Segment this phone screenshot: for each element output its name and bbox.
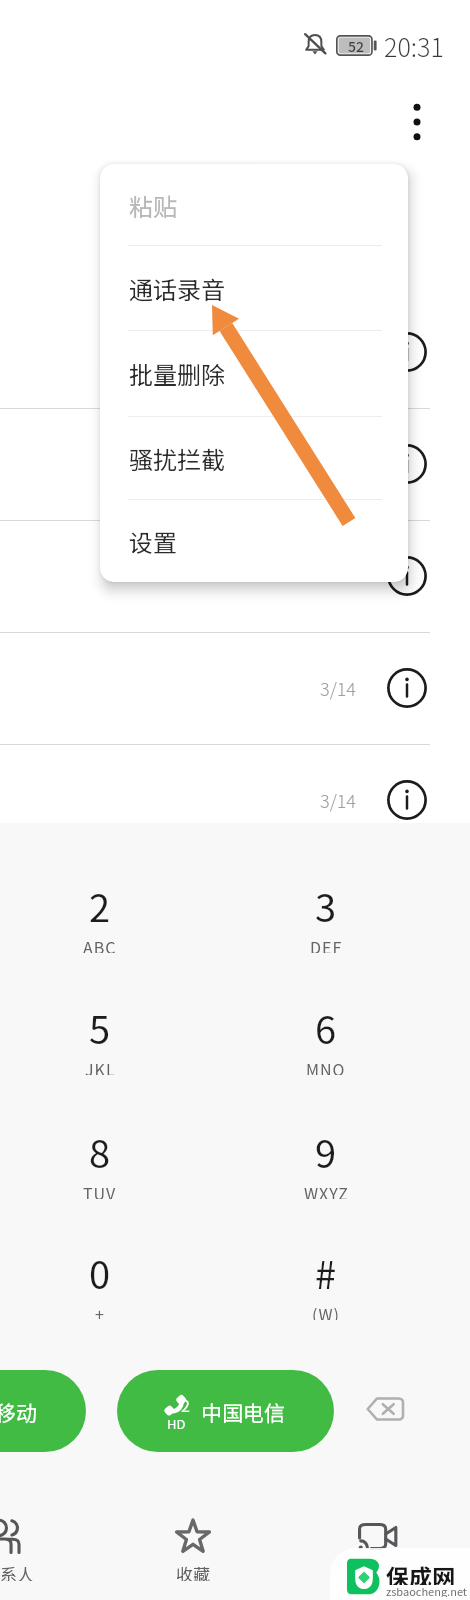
button[interactable]: 0	[44, 1224, 156, 1336]
staticText: (W)	[312, 1302, 340, 1320]
staticText: 3	[315, 878, 337, 926]
staticText: 批量删除	[129, 356, 225, 391]
button[interactable]: More options	[391, 96, 443, 148]
button[interactable]: 5	[44, 979, 156, 1091]
staticText: 20:31	[384, 28, 444, 64]
button[interactable]: 设置	[100, 505, 408, 577]
button[interactable]: 联系人	[0, 1498, 58, 1592]
button[interactable]: Call details	[383, 440, 431, 488]
button[interactable]: 1	[0, 1370, 86, 1452]
button[interactable]: Delete	[361, 1385, 409, 1433]
staticText: 中国电信	[201, 1397, 285, 1427]
button[interactable]: 批量删除	[100, 337, 408, 409]
staticText: TUV	[83, 1181, 117, 1199]
staticText: 2	[89, 878, 111, 926]
staticText: 设置	[129, 524, 177, 559]
staticText: MNO	[306, 1057, 346, 1075]
button[interactable]: 粘贴	[100, 169, 408, 241]
staticText: 8	[89, 1124, 111, 1172]
button[interactable]: Call details	[383, 328, 431, 376]
staticText: 6	[315, 1000, 337, 1048]
button[interactable]: 2	[44, 857, 156, 969]
button[interactable]: 9	[270, 1103, 382, 1215]
button[interactable]: Call details	[383, 664, 431, 712]
staticText: 3/14	[320, 787, 356, 813]
button[interactable]: 6	[270, 979, 382, 1091]
button[interactable]: 2	[117, 1370, 334, 1452]
button[interactable]: 8	[44, 1103, 156, 1215]
staticText: 通话录音	[129, 271, 225, 306]
staticText: 粘贴	[129, 188, 177, 223]
staticText: 联系人	[0, 1561, 34, 1581]
staticText: 0	[89, 1245, 111, 1293]
button[interactable]: #	[270, 1224, 382, 1336]
button[interactable]: 骚扰拦截	[100, 422, 408, 494]
staticText: +	[95, 1302, 105, 1320]
button[interactable]: 收藏	[143, 1498, 243, 1592]
staticText: 5	[89, 1000, 111, 1048]
staticText: HD	[167, 1414, 186, 1433]
staticText: 收藏	[176, 1561, 210, 1581]
staticText: 52	[348, 36, 364, 56]
staticText: 9	[315, 1124, 337, 1172]
staticText: #	[315, 1245, 337, 1293]
staticText: WXYZ	[304, 1181, 349, 1199]
button[interactable]: 通话录音	[100, 252, 408, 324]
button[interactable]: Video call	[327, 1498, 427, 1592]
staticText: 3/14	[320, 675, 356, 701]
button[interactable]: Call details	[383, 552, 431, 600]
button[interactable]: Call details	[383, 776, 431, 824]
button[interactable]: 3	[270, 857, 382, 969]
staticText: 2	[181, 1393, 190, 1416]
staticText: JKL	[85, 1057, 116, 1075]
staticText: 骚扰拦截	[129, 441, 225, 476]
staticText: 广东移动	[0, 1397, 37, 1427]
staticText: ABC	[83, 935, 117, 953]
staticText: 保成网	[386, 1559, 455, 1585]
staticText: zsbaocheng.net	[386, 1583, 467, 1597]
staticText: DEF	[310, 935, 343, 953]
